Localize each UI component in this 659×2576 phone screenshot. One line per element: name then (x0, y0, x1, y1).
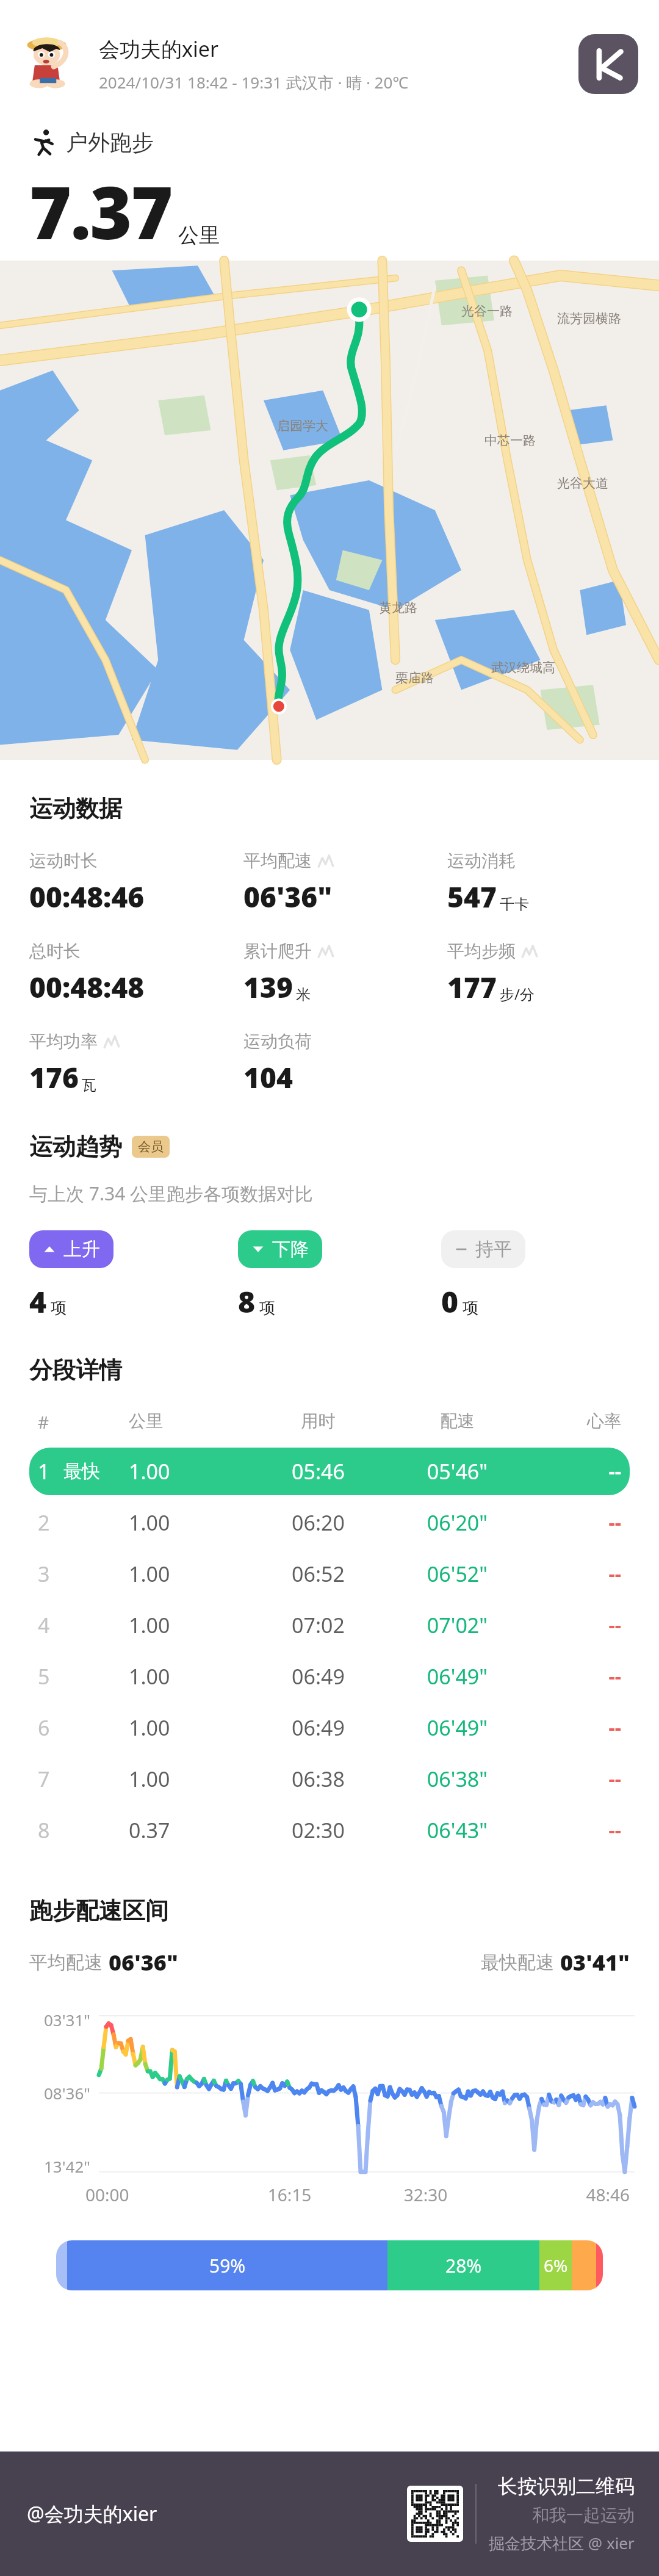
button[interactable]: 持平 (441, 1230, 525, 1268)
staticText: 2024/10/31 18:42 - 19:31 武汉市 · 晴 · 20℃ (99, 71, 409, 93)
staticText: -- (530, 1509, 621, 1536)
staticText: 28% (445, 2253, 482, 2278)
staticText: 59% (209, 2253, 246, 2278)
staticText: 跑步配速区间 (29, 1896, 168, 1925)
staticText: 1.00 (129, 1611, 252, 1639)
staticText: 米 (296, 986, 311, 1004)
staticText: 运动趋势 (29, 1132, 122, 1161)
staticText: 3 (38, 1560, 50, 1588)
staticText: 上升 (63, 1238, 100, 1261)
staticText: 项 (463, 1298, 478, 1318)
staticText: 和我一起运动 (532, 2505, 635, 2526)
button[interactable]: 4 (29, 1601, 630, 1649)
staticText: 8 (38, 1816, 50, 1844)
staticText: 户外跑步 (66, 129, 154, 156)
staticText: 光谷一路 (461, 303, 513, 319)
staticText: 06:49 (252, 1662, 384, 1690)
staticText: @会功夫的xier (27, 2500, 407, 2527)
staticText: 16:15 (221, 2183, 358, 2206)
staticText: 1.00 (129, 1560, 252, 1588)
button[interactable]: 7 (29, 1755, 630, 1803)
staticText: 06'38" (384, 1765, 530, 1793)
staticText: 下降 (272, 1238, 309, 1261)
staticText: 千卡 (500, 895, 529, 914)
staticText: 1.00 (129, 1457, 252, 1485)
button[interactable]: 5 (29, 1653, 630, 1700)
staticText: 持平 (475, 1238, 512, 1261)
staticText: -- (530, 1560, 621, 1587)
staticText: 运动数据 (29, 794, 122, 823)
staticText: 分段详情 (29, 1355, 122, 1385)
staticText: 瓦 (82, 1076, 96, 1094)
staticText: 6 (38, 1714, 50, 1742)
staticText: 最快 (63, 1460, 100, 1483)
staticText: 平均步频 (447, 940, 516, 962)
staticText: 流芳园横路 (557, 311, 621, 327)
button[interactable]: Keep logo (578, 34, 638, 94)
staticText: 心率 (530, 1410, 621, 1432)
staticText: 06'43" (384, 1816, 530, 1844)
staticText: -- (530, 1817, 621, 1844)
staticText: 0.37 (129, 1816, 252, 1844)
staticText: 1.00 (129, 1714, 252, 1742)
staticText: 平均配速 (243, 850, 312, 871)
button[interactable]: QR code (407, 2486, 463, 2542)
staticText: 7.37 (29, 162, 172, 261)
staticText: -- (530, 1612, 621, 1639)
staticText: 00:48:46 (29, 878, 145, 916)
staticText: 1.00 (129, 1765, 252, 1793)
staticText: 累计爬升 (243, 940, 312, 962)
staticText: 06'49" (384, 1662, 530, 1690)
staticText: 03'41" (560, 1947, 630, 1977)
staticText: 05:46 (252, 1457, 384, 1485)
staticText: 运动时长 (29, 850, 98, 871)
staticText: 1 (38, 1457, 50, 1485)
staticText: 07'02" (384, 1611, 530, 1639)
staticText: 0 (441, 1282, 459, 1321)
staticText: 02:30 (252, 1816, 384, 1844)
staticText: 项 (259, 1298, 275, 1318)
staticText: 06:20 (252, 1509, 384, 1537)
staticText: 06:49 (252, 1714, 384, 1742)
staticText: 运动负荷 (243, 1031, 312, 1052)
staticText: 06'36" (109, 1947, 178, 1977)
staticText: 48:46 (494, 2183, 630, 2206)
button[interactable]: 光谷一路 (0, 261, 659, 760)
button[interactable]: 上升 (29, 1230, 113, 1268)
staticText: 光谷大道 (557, 475, 608, 491)
staticText: 139 (243, 968, 293, 1006)
staticText: -- (530, 1663, 621, 1690)
staticText: 00:00 (85, 2183, 221, 2206)
staticText: 黄龙路 (379, 600, 417, 616)
staticText: 平均功率 (29, 1031, 98, 1052)
button[interactable]: 1 (29, 1448, 630, 1495)
staticText: -- (530, 1766, 621, 1792)
staticText: 步/分 (500, 984, 535, 1004)
staticText: 最快配速 (481, 1951, 554, 1974)
staticText: -- (530, 1714, 621, 1741)
button[interactable]: 59% (56, 2240, 603, 2290)
staticText: 547 (447, 878, 497, 916)
staticText: 总时长 (29, 940, 81, 962)
staticText: 项 (51, 1298, 67, 1318)
staticText: 公里 (129, 1410, 252, 1432)
button[interactable]: 3 (29, 1550, 630, 1598)
staticText: 03'31" (44, 2009, 90, 2030)
staticText: 4 (38, 1611, 50, 1639)
button[interactable]: 下降 (238, 1230, 322, 1268)
button[interactable]: 6 (29, 1704, 630, 1752)
staticText: 启园学大 (277, 418, 328, 434)
staticText: 00:48:48 (29, 968, 145, 1006)
staticText: 06'36" (243, 878, 333, 916)
staticText: 5 (38, 1662, 50, 1690)
staticText: 32:30 (358, 2183, 494, 2206)
staticText: 7 (38, 1765, 50, 1793)
staticText: 1.00 (129, 1509, 252, 1537)
staticText: 公里 (178, 222, 220, 248)
button[interactable]: 8 (29, 1806, 630, 1854)
button[interactable]: 2 (29, 1499, 630, 1546)
staticText: 4 (29, 1282, 47, 1321)
staticText: 用时 (252, 1410, 384, 1432)
staticText: 平均配速 (29, 1951, 103, 1974)
staticText: 会员 (138, 1139, 164, 1155)
